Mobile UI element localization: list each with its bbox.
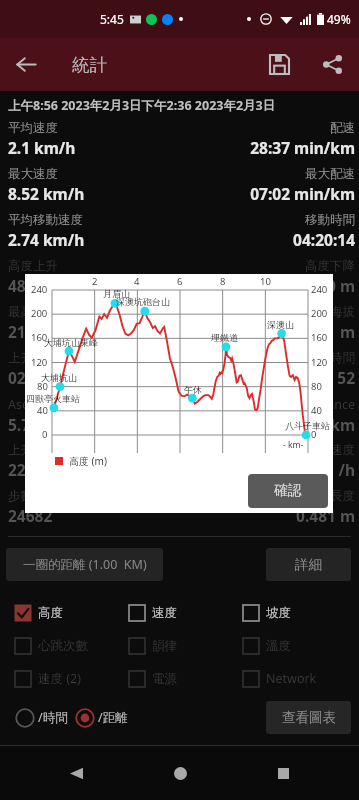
staticText: 24682	[8, 505, 53, 526]
staticText: 22	[8, 459, 26, 480]
staticText: 04:20:14	[293, 229, 355, 250]
staticText: 高度	[38, 605, 63, 621]
staticText: 160	[311, 331, 328, 344]
staticText: 49%	[327, 11, 351, 27]
staticText: - km-	[283, 439, 304, 451]
staticText: 大埔坑山東峰	[44, 337, 98, 348]
staticText: /時間	[38, 709, 68, 726]
button[interactable]: 高度上升	[0, 258, 359, 304]
staticText: 10	[260, 275, 271, 288]
button[interactable]: 速度 (2)	[14, 662, 128, 695]
staticText: 時間	[330, 350, 355, 366]
button[interactable]: 心跳次數	[14, 629, 128, 662]
staticText: 大埔坑山	[41, 372, 77, 383]
staticText: 80	[37, 380, 48, 393]
staticText: 速度	[330, 442, 355, 458]
staticText: 步數	[8, 488, 33, 504]
staticText: 高度 (m)	[69, 454, 107, 468]
button[interactable]: Back	[49, 746, 103, 800]
staticText: 200	[31, 307, 48, 320]
button[interactable]: 速度	[128, 596, 242, 629]
button[interactable]: 步數	[0, 488, 359, 534]
button[interactable]: Recents	[256, 746, 310, 800]
staticText: Network	[266, 670, 317, 687]
staticText: 21	[8, 321, 26, 342]
staticText: 統計	[72, 54, 107, 76]
staticText: 0	[42, 428, 48, 441]
staticText: 120	[311, 356, 328, 369]
button[interactable]: Back	[0, 38, 53, 91]
staticText: 心跳次數	[38, 638, 88, 654]
button[interactable]: Home	[153, 746, 207, 800]
button[interactable]: 平均速度	[0, 120, 359, 166]
staticText: /h	[338, 459, 355, 480]
staticText: 一圈的距離 (1.00 KM)	[23, 556, 147, 573]
staticText: 上升	[8, 442, 33, 458]
button[interactable]: 上升	[0, 442, 359, 488]
staticText: 配速	[330, 120, 355, 136]
staticText: 240	[311, 283, 328, 296]
staticText: 長度	[330, 488, 355, 504]
staticText: 四獸亭火車站	[26, 393, 80, 404]
staticText: 240 m	[309, 275, 355, 296]
staticText: 5.7	[8, 414, 31, 435]
staticText: 速度 (2)	[38, 670, 81, 687]
staticText: 上午8:56 2023年2月3日下午2:36 2023年2月3日	[8, 97, 276, 114]
button[interactable]: 平均移動速度	[0, 212, 359, 258]
button[interactable]: 上升	[0, 350, 359, 396]
staticText: 0	[311, 428, 317, 441]
button[interactable]: /時間	[15, 701, 68, 734]
staticText: 確認	[274, 482, 302, 500]
button[interactable]: 確認	[248, 474, 328, 508]
staticText: 8.52 km/h	[8, 183, 85, 204]
staticText: 2	[92, 275, 98, 288]
staticText: 40	[37, 404, 48, 417]
staticText: 28:37 min/km	[250, 137, 355, 158]
staticText: 80	[311, 380, 322, 393]
staticText: 最大配速	[305, 166, 355, 182]
staticText: 8	[220, 275, 226, 288]
staticText: 月眉山	[103, 288, 130, 299]
button[interactable]: 韻律	[128, 629, 242, 662]
staticText: 八斗子車站	[285, 420, 330, 431]
button[interactable]: 溫度	[242, 629, 347, 662]
button[interactable]: Share	[306, 38, 359, 91]
staticText: 高度下降	[305, 258, 355, 274]
staticText: 深澳坑砲台山	[116, 296, 170, 307]
staticText: 詳細	[295, 556, 322, 573]
staticText: 5:45	[100, 11, 124, 27]
staticText: Ascent	[8, 396, 48, 413]
staticText: 07:02 min/km	[250, 183, 355, 204]
staticText: 移動時間	[305, 212, 355, 228]
staticText: 0.481 m	[296, 505, 355, 526]
button[interactable]: Save	[253, 38, 306, 91]
staticText: 2.74 km/h	[8, 229, 85, 250]
staticText: m	[339, 321, 355, 342]
button[interactable]: 詳細	[266, 548, 351, 581]
staticText: 6	[177, 275, 183, 288]
staticText: 午休	[184, 384, 202, 395]
button[interactable]: 高度	[14, 596, 128, 629]
button[interactable]: 最大速度	[0, 166, 359, 212]
button[interactable]: 坡度	[242, 596, 347, 629]
staticText: 查看圖表	[282, 709, 336, 726]
staticText: 2.1 km/h	[8, 137, 76, 158]
staticText: 4	[134, 275, 140, 288]
button[interactable]: /距離	[75, 701, 128, 734]
staticText: /距離	[98, 709, 128, 726]
button[interactable]: 一圈的距離 (1.00 KM)	[6, 548, 163, 581]
button[interactable]: Ascent	[0, 396, 359, 442]
staticText: km	[330, 414, 355, 435]
staticText: 坡度	[266, 605, 291, 621]
button[interactable]: 查看圖表	[266, 701, 351, 734]
button[interactable]: 電源	[128, 662, 242, 695]
staticText: 40	[311, 404, 322, 417]
staticText: ance	[327, 396, 355, 413]
button[interactable]: Network	[242, 662, 347, 695]
staticText: 160	[31, 331, 48, 344]
button[interactable]: 最高	[0, 304, 359, 350]
staticText: 200	[311, 307, 328, 320]
staticText: 高度上升	[8, 258, 58, 274]
staticText: 120	[31, 356, 48, 369]
staticText: 52	[337, 367, 355, 388]
